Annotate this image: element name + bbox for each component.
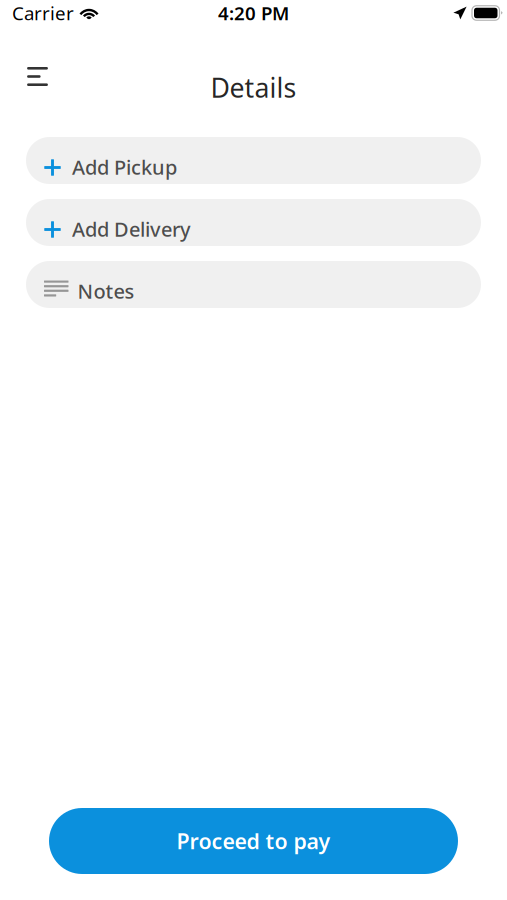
staticText: 4:20 PM: [218, 1, 289, 25]
button[interactable]: Add Pickup: [26, 137, 481, 184]
staticText: Add Pickup: [72, 154, 177, 180]
staticText: Proceed to pay: [176, 827, 330, 855]
button[interactable]: Proceed to pay: [49, 808, 458, 874]
button[interactable]: Notes: [26, 261, 481, 308]
staticText: Add Delivery: [72, 216, 191, 242]
button[interactable]: Add Delivery: [26, 199, 481, 246]
staticText: Notes: [77, 278, 134, 304]
staticText: Details: [210, 70, 296, 105]
staticText: Carrier: [12, 1, 74, 25]
button[interactable]: Menu: [15, 54, 59, 98]
